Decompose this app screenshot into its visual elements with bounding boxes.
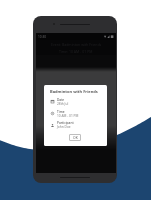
- staticText: 28th Jul: [57, 102, 69, 106]
- staticText: Date: [57, 98, 65, 102]
- staticText: OK: [73, 135, 78, 140]
- staticText: Badminton with Friends: [50, 89, 98, 94]
- staticText: Participant: [57, 121, 74, 125]
- staticText: Time: [57, 110, 65, 114]
- staticText: 10 AM - 01 PM: [57, 114, 79, 118]
- staticText: John Doe: [57, 125, 71, 129]
- staticText: Time: 10 AM - 01 PM: [59, 49, 93, 53]
- button[interactable]: OK: [69, 134, 81, 141]
- staticText: Event: Badminton with Friends: [51, 42, 102, 47]
- staticText: 10:30: [38, 35, 47, 39]
